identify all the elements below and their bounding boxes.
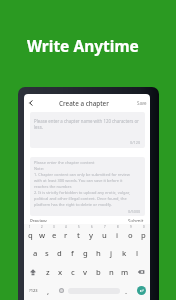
- button[interactable]: Save: [134, 98, 150, 108]
- staticText: 2: [41, 225, 43, 229]
- button[interactable]: h: [92, 243, 105, 262]
- staticText: c: [71, 267, 75, 277]
- staticText: Submit: [128, 218, 144, 222]
- staticText: Save: [137, 100, 147, 106]
- staticText: a: [33, 248, 38, 258]
- staticText: 0: [143, 225, 145, 229]
- button[interactable]: ?123: [24, 281, 42, 300]
- staticText: Write Anytime: [27, 35, 139, 56]
- staticText: r: [64, 230, 68, 240]
- button[interactable]: m: [118, 262, 131, 281]
- staticText: w: [39, 230, 46, 240]
- staticText: 0/120: [130, 140, 141, 145]
- staticText: l: [136, 248, 139, 258]
- button[interactable]: Backspace: [131, 262, 150, 281]
- button[interactable]: 1: [24, 224, 36, 243]
- staticText: i: [116, 230, 119, 240]
- staticText: t: [77, 230, 80, 240]
- staticText: h: [96, 248, 101, 258]
- button[interactable]: Change language: [55, 281, 67, 300]
- staticText: .: [125, 286, 128, 296]
- button[interactable]: 3: [48, 224, 60, 243]
- button[interactable]: ,: [42, 281, 55, 300]
- staticText: 3: [53, 225, 55, 229]
- button[interactable]: d: [53, 243, 66, 262]
- staticText: 5: [78, 225, 80, 229]
- button[interactable]: 0: [137, 224, 150, 243]
- staticText: g: [83, 248, 88, 258]
- button[interactable]: z: [42, 262, 54, 281]
- button[interactable]: b: [92, 262, 105, 281]
- button[interactable]: Preview: [27, 216, 50, 224]
- staticText: m: [121, 267, 129, 277]
- staticText: p: [141, 230, 146, 240]
- button[interactable]: k: [118, 243, 131, 262]
- staticText: v: [83, 267, 88, 277]
- staticText: Please enter a chapter name with 120 cha…: [34, 118, 144, 130]
- button[interactable]: 6: [85, 224, 98, 243]
- staticText: 9: [130, 225, 132, 229]
- button[interactable]: Enter: [133, 281, 150, 300]
- button[interactable]: Back: [24, 96, 38, 110]
- staticText: q: [28, 230, 33, 240]
- staticText: Preview: [30, 218, 47, 222]
- button[interactable]: Please enter the chapter content Note: 1…: [30, 157, 145, 216]
- staticText: 4: [65, 225, 67, 229]
- staticText: e: [52, 230, 57, 240]
- staticText: 6: [91, 225, 93, 229]
- staticText: x: [58, 267, 63, 277]
- button[interactable]: Shift: [24, 262, 42, 281]
- button[interactable]: f: [66, 243, 79, 262]
- staticText: u: [102, 230, 107, 240]
- staticText: n: [109, 267, 114, 277]
- button[interactable]: [67, 281, 120, 300]
- staticText: 8: [117, 225, 119, 229]
- staticText: ?123: [29, 288, 38, 293]
- staticText: k: [122, 248, 127, 258]
- button[interactable]: x: [54, 262, 66, 281]
- staticText: s: [45, 248, 49, 258]
- staticText: 7: [104, 225, 106, 229]
- button[interactable]: n: [105, 262, 118, 281]
- button[interactable]: 7: [98, 224, 111, 243]
- staticText: 0/5000: [128, 209, 141, 214]
- staticText: Please enter the chapter content Note: 1…: [34, 160, 135, 207]
- staticText: j: [110, 248, 113, 258]
- button[interactable]: j: [105, 243, 118, 262]
- button[interactable]: .: [120, 281, 133, 300]
- button[interactable]: s: [41, 243, 53, 262]
- button[interactable]: v: [79, 262, 92, 281]
- button[interactable]: c: [66, 262, 79, 281]
- button[interactable]: l: [131, 243, 144, 262]
- button[interactable]: Submit: [125, 216, 147, 224]
- staticText: 1: [29, 225, 31, 229]
- staticText: ,: [47, 286, 50, 296]
- button[interactable]: 9: [124, 224, 137, 243]
- button[interactable]: 4: [60, 224, 72, 243]
- staticText: y: [89, 230, 94, 240]
- button[interactable]: g: [79, 243, 92, 262]
- staticText: Create a chapter: [59, 99, 109, 108]
- staticText: d: [57, 248, 62, 258]
- button[interactable]: a: [29, 243, 41, 262]
- button[interactable]: 5: [72, 224, 85, 243]
- staticText: z: [46, 267, 50, 277]
- staticText: b: [96, 267, 101, 277]
- button[interactable]: Please enter a chapter name with 120 cha…: [30, 112, 145, 148]
- staticText: o: [128, 230, 133, 240]
- button[interactable]: 2: [36, 224, 48, 243]
- staticText: f: [71, 248, 74, 258]
- button[interactable]: 8: [111, 224, 124, 243]
